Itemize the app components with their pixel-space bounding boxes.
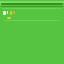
button[interactable]: Secondary action xyxy=(13,11,15,14)
button[interactable]: Primary action xyxy=(10,11,12,15)
button[interactable]: Content tile xyxy=(3,11,6,15)
button[interactable]: Confirm xyxy=(7,17,11,19)
